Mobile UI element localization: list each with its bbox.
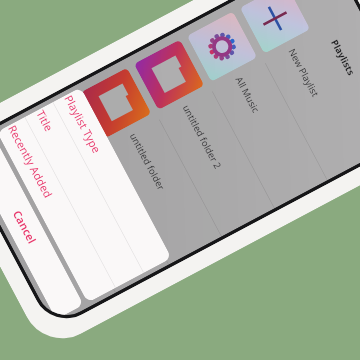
staticText: Playlist Type [61, 92, 104, 156]
button[interactable]: untitled folder [73, 58, 221, 265]
staticText: All Music [233, 74, 262, 115]
button[interactable]: Recently Added [0, 117, 115, 303]
button[interactable]: untitled folder 2 [126, 30, 274, 237]
staticText: Title [33, 107, 56, 134]
button[interactable]: New Playlist [232, 0, 360, 180]
button[interactable]: Cancel [0, 134, 84, 320]
button[interactable]: Playlist Type [53, 87, 172, 273]
staticText: Cancel [10, 208, 40, 246]
staticText: Playlists [328, 37, 358, 78]
button[interactable]: Title [25, 102, 143, 288]
staticText: untitled folder [127, 131, 168, 193]
button[interactable]: All Music [179, 2, 327, 209]
staticText: New Playlist [286, 46, 322, 99]
staticText: untitled folder 2 [180, 103, 224, 171]
button[interactable]: untitled folder 3 [20, 86, 168, 293]
staticText: Recently Added [5, 122, 56, 200]
